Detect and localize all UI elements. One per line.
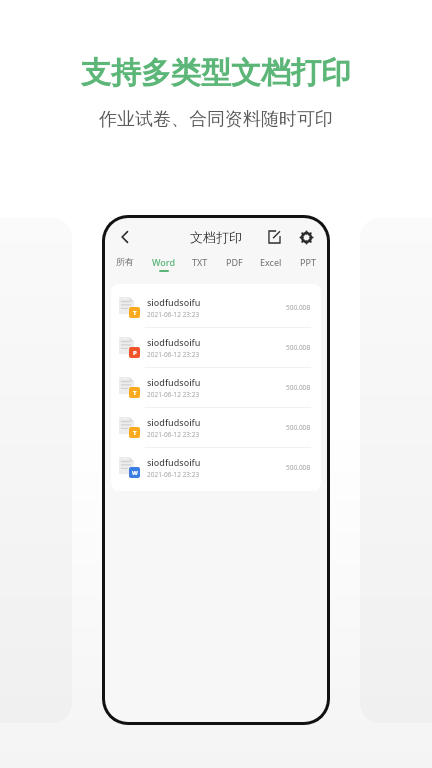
staticText: 500.00B [286, 423, 311, 432]
staticText: siodfudsoifu [147, 376, 201, 388]
button[interactable]: PPT [297, 256, 319, 268]
staticText: PDF [226, 256, 243, 268]
button[interactable]: PDF [223, 256, 246, 268]
button[interactable]: Settings [295, 226, 317, 248]
staticText: T [133, 429, 137, 437]
staticText: 2021-06-12 23:23 [147, 470, 200, 479]
staticText: T [133, 309, 137, 317]
staticText: 文档打印 [190, 229, 242, 245]
staticText: TXT [192, 256, 208, 268]
button[interactable]: T [111, 288, 321, 327]
button[interactable]: TXT [189, 256, 211, 268]
staticText: 2021-06-12 23:23 [147, 350, 200, 359]
staticText: 作业试卷、合同资料随时可印 [99, 108, 333, 131]
button[interactable]: Excel [257, 256, 285, 268]
staticText: T [133, 389, 137, 397]
button[interactable]: P [111, 328, 321, 367]
staticText: 2021-06-12 23:23 [147, 430, 200, 439]
staticText: 所有 [116, 256, 134, 267]
staticText: W [132, 469, 138, 477]
button[interactable]: Compose [263, 226, 285, 248]
staticText: 500.00B [286, 303, 311, 312]
button[interactable]: 所有 [113, 256, 137, 267]
staticText: Word [152, 256, 175, 268]
staticText: siodfudsoifu [147, 336, 201, 348]
button[interactable]: T [111, 368, 321, 407]
staticText: P [133, 349, 137, 357]
staticText: siodfudsoifu [147, 416, 201, 428]
button[interactable]: Back [113, 225, 137, 249]
staticText: 500.00B [286, 383, 311, 392]
staticText: 2021-06-12 23:23 [147, 310, 200, 319]
staticText: PPT [300, 256, 316, 268]
staticText: 500.00B [286, 343, 311, 352]
staticText: siodfudsoifu [147, 456, 201, 468]
button[interactable]: W [111, 448, 321, 487]
button[interactable]: Word [149, 256, 178, 272]
staticText: 500.00B [286, 463, 311, 472]
staticText: 2021-06-12 23:23 [147, 390, 200, 399]
staticText: Excel [260, 256, 282, 268]
staticText: siodfudsoifu [147, 296, 201, 308]
button[interactable]: T [111, 408, 321, 447]
staticText: 支持多类型文档打印 [81, 54, 351, 92]
